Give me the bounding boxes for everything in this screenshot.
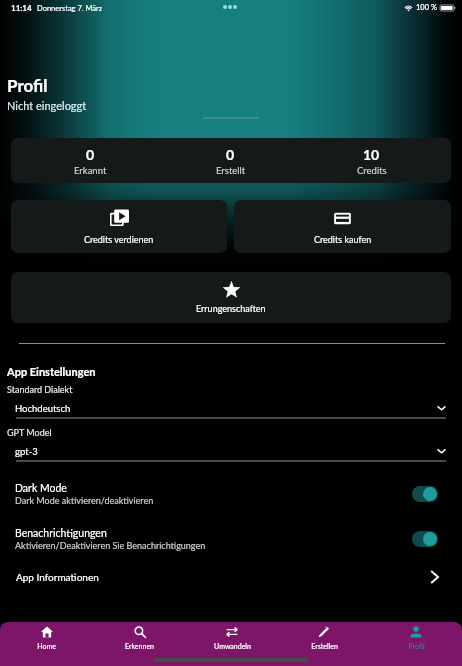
button[interactable]: Profil bbox=[370, 622, 462, 650]
button[interactable]: Dark Mode bbox=[0, 479, 462, 509]
staticText: Dark Mode bbox=[15, 482, 67, 495]
button[interactable]: Erstellen bbox=[278, 622, 370, 650]
staticText: Profil bbox=[7, 75, 48, 95]
button[interactable]: Benachrichtigungen bbox=[0, 524, 462, 554]
staticText: GPT Model bbox=[7, 427, 52, 438]
staticText: Credits verdienen bbox=[84, 234, 154, 245]
staticText: Erkennen bbox=[125, 642, 154, 650]
other: Credits kaufen bbox=[333, 209, 352, 228]
staticText: 0 bbox=[226, 146, 235, 163]
staticText: Standard Dialekt bbox=[7, 384, 73, 395]
button[interactable]: App Informationen bbox=[0, 564, 462, 590]
button[interactable]: 0 bbox=[11, 138, 451, 183]
button[interactable]: Credits kaufen bbox=[234, 200, 451, 253]
staticText: Nicht eingeloggt bbox=[7, 99, 87, 112]
other: App Informationen bbox=[431, 571, 439, 583]
staticText: Umwandeln bbox=[214, 642, 251, 650]
staticText: Errungenschaften bbox=[196, 303, 266, 314]
staticText: 10 bbox=[363, 146, 380, 163]
button[interactable]: Credits verdienen bbox=[11, 200, 227, 253]
button[interactable]: Erkennen bbox=[93, 622, 186, 650]
staticText: Home bbox=[37, 642, 56, 650]
other: WLAN bbox=[404, 4, 413, 11]
staticText: gpt-3 bbox=[15, 446, 38, 457]
button[interactable]: Hochdeutsch bbox=[0, 399, 462, 419]
button[interactable]: gpt-3 bbox=[0, 442, 462, 462]
staticText: 100 % bbox=[416, 3, 437, 12]
staticText: Erstellen bbox=[311, 642, 338, 650]
staticText: Hochdeutsch bbox=[15, 403, 71, 414]
staticText: Donnerstag 7. März bbox=[37, 4, 103, 13]
button[interactable]: Umwandeln bbox=[186, 622, 278, 650]
button[interactable]: Home bbox=[0, 622, 93, 650]
staticText: Credits bbox=[357, 165, 387, 176]
staticText: Aktivieren/Deaktivieren Sie Benachrichti… bbox=[15, 540, 206, 551]
staticText: App Informationen bbox=[16, 571, 99, 583]
staticText: App Einstellungen bbox=[7, 365, 96, 378]
other: Akku bbox=[440, 4, 456, 12]
staticText: Credits kaufen bbox=[314, 234, 372, 245]
staticText: Erstellt bbox=[216, 165, 246, 176]
other: Errungenschaften bbox=[223, 281, 240, 298]
button[interactable]: Errungenschaften bbox=[11, 272, 451, 323]
staticText: Erkannt bbox=[74, 165, 107, 176]
staticText: Dark Mode aktivieren/deaktivieren bbox=[15, 495, 154, 506]
staticText: 11:14 bbox=[11, 3, 32, 13]
staticText: 0 bbox=[86, 146, 95, 163]
staticText: Benachrichtigungen bbox=[15, 527, 107, 540]
staticText: Profil bbox=[408, 642, 425, 650]
other: Credits verdienen bbox=[110, 209, 129, 228]
